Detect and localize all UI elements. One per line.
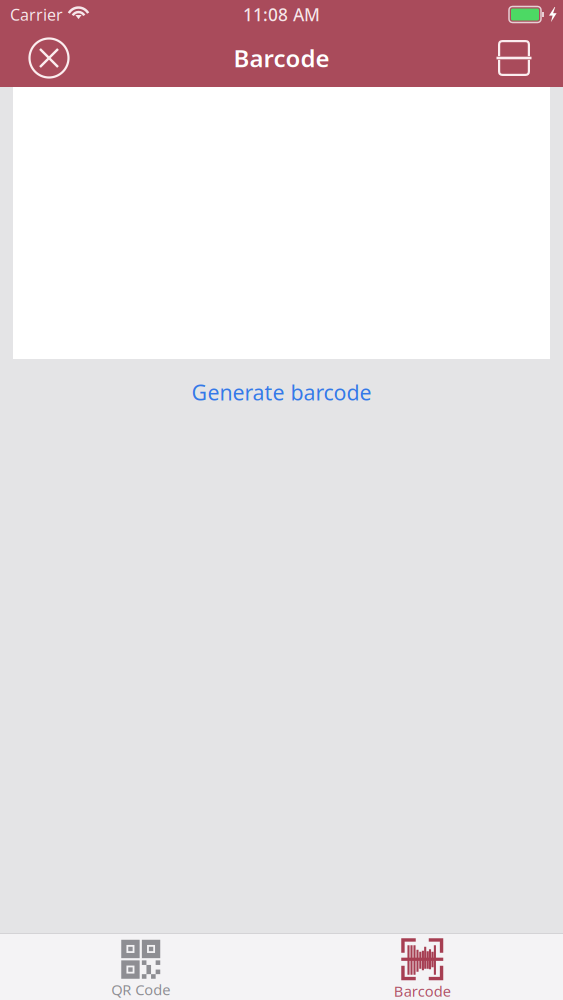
button[interactable]: QR Code [0, 940, 281, 999]
staticText: QR Code [111, 980, 170, 999]
button[interactable]: Scan [490, 34, 538, 82]
button[interactable]: Close [25, 34, 73, 82]
staticText: Carrier [10, 4, 63, 25]
button[interactable]: Barcode [281, 938, 563, 1000]
staticText: Barcode [233, 42, 329, 74]
staticText: Generate barcode [191, 378, 371, 406]
staticText: Barcode [394, 981, 451, 1000]
staticText: 11:08 AM [243, 3, 320, 26]
button[interactable]: Generate barcode [0, 368, 563, 416]
